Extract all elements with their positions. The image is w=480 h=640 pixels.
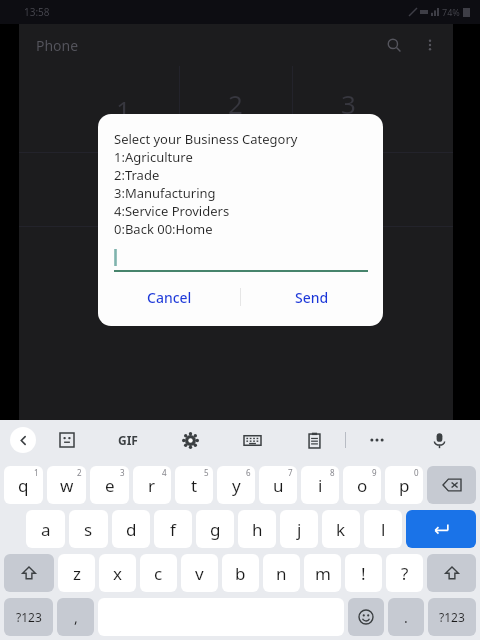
staticText: 5 (204, 467, 209, 478)
button[interactable]: i (301, 466, 339, 504)
button[interactable]: x (99, 554, 136, 592)
staticText: 4 (116, 166, 131, 201)
staticText: Send (295, 288, 329, 307)
staticText: k (336, 518, 346, 541)
button[interactable]: o (343, 466, 381, 504)
button[interactable]: ?123 (428, 598, 476, 636)
button[interactable]: 6 (292, 152, 405, 226)
button[interactable]: More (346, 420, 408, 460)
button[interactable]: f (154, 510, 192, 548)
button[interactable]: Clipboard (283, 420, 345, 460)
button[interactable]: GIF (97, 420, 159, 460)
staticText: t (191, 474, 198, 497)
staticText: b (235, 562, 246, 585)
staticText: 2 (77, 467, 82, 478)
button[interactable]: k (322, 510, 360, 548)
button[interactable]: Cancel (98, 272, 240, 322)
staticText: y (232, 474, 241, 497)
staticText: 8 (330, 467, 335, 478)
button[interactable]: l (364, 510, 402, 548)
button[interactable]: 2 (179, 66, 292, 152)
staticText: ? (401, 562, 409, 585)
button[interactable]: Backspace (427, 466, 476, 504)
button[interactable]: 8 (179, 226, 292, 300)
button[interactable]: 7 (67, 226, 179, 300)
button[interactable]: Stickers (36, 420, 97, 460)
staticText: Select your Business Category (114, 130, 298, 148)
staticText: . (404, 608, 408, 627)
staticText: 6 (246, 467, 251, 478)
staticText: x (113, 562, 122, 585)
staticText: n (276, 562, 287, 585)
button[interactable]: e (90, 466, 129, 504)
button[interactable]: 5 (179, 152, 292, 226)
staticText: u (273, 474, 284, 497)
button[interactable]: h (238, 510, 276, 548)
staticText: 13:58 (24, 5, 50, 19)
button[interactable]: Voice input (408, 420, 470, 460)
button[interactable]: More options (419, 34, 441, 56)
button[interactable]: Settings (159, 420, 221, 460)
button[interactable]: Emoji (348, 598, 384, 636)
button[interactable]: d (112, 510, 150, 548)
button[interactable]: y (217, 466, 255, 504)
button[interactable]: t (175, 466, 213, 504)
staticText: 9 (341, 240, 356, 275)
button[interactable]: 1 (67, 66, 179, 152)
button[interactable]: Shift (427, 554, 476, 592)
button[interactable]: g (196, 510, 234, 548)
button[interactable]: a (26, 510, 65, 548)
staticText: 0 (414, 467, 419, 478)
button[interactable]: Keyboard modes (221, 420, 283, 460)
button[interactable]: u (259, 466, 297, 504)
staticText: q (18, 474, 29, 497)
button[interactable]: 9 (292, 226, 405, 300)
staticText: f (170, 518, 176, 541)
button[interactable]: q (4, 466, 43, 504)
button[interactable]: v (181, 554, 218, 592)
button[interactable]: p (385, 466, 423, 504)
staticText: 74% (442, 6, 460, 18)
button[interactable]: Search (383, 34, 405, 56)
button[interactable]: z (58, 554, 95, 592)
button[interactable]: . (388, 598, 424, 636)
staticText: a (41, 518, 51, 541)
button[interactable]: n (263, 554, 300, 592)
staticText: p (399, 474, 410, 497)
button[interactable]: m (304, 554, 341, 592)
button[interactable]: b (222, 554, 259, 592)
button[interactable]: 4 (67, 152, 179, 226)
staticText: 1:Agriculture (114, 148, 193, 166)
staticText: j (297, 518, 302, 541)
staticText: ?123 (16, 609, 42, 625)
button[interactable]: Enter (406, 510, 476, 548)
staticText: 4:Service Providers (114, 202, 230, 220)
staticText: 7 (288, 467, 293, 478)
button[interactable]: ? (386, 554, 423, 592)
button[interactable]: Shift (4, 554, 54, 592)
button[interactable]: s (69, 510, 108, 548)
staticText: 1 (116, 92, 131, 127)
button[interactable]: Back (10, 427, 36, 453)
button[interactable]: c (140, 554, 177, 592)
button[interactable]: Send (241, 272, 383, 322)
staticText: 3 (120, 467, 125, 478)
button[interactable]: ! (345, 554, 382, 592)
button[interactable]: , (57, 598, 94, 636)
button[interactable]: w (47, 466, 86, 504)
button[interactable]: j (280, 510, 318, 548)
staticText: ?123 (439, 609, 465, 625)
button[interactable]: r (133, 466, 171, 504)
staticText: h (252, 518, 263, 541)
staticText: GIF (118, 432, 138, 448)
button[interactable] (114, 248, 368, 272)
button[interactable]: ?123 (4, 598, 53, 636)
button[interactable]: 3 (292, 66, 405, 152)
